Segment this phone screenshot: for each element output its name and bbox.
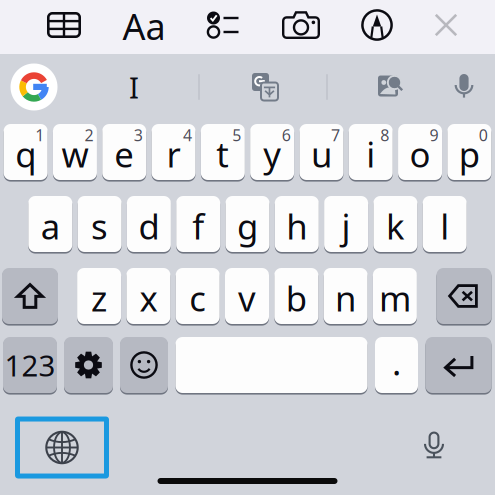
staticText: g bbox=[237, 203, 258, 249]
button[interactable]: Translate bbox=[242, 64, 288, 110]
button[interactable]: a bbox=[28, 196, 72, 252]
button[interactable]: d bbox=[127, 196, 171, 252]
button[interactable]: Emoji bbox=[120, 337, 168, 393]
staticText: w bbox=[61, 131, 88, 177]
staticText: 8 bbox=[380, 124, 389, 146]
staticText: n bbox=[335, 275, 356, 321]
staticText: r bbox=[166, 131, 180, 177]
staticText: 3 bbox=[134, 124, 143, 146]
staticText: d bbox=[138, 203, 159, 249]
staticText: e bbox=[114, 131, 134, 177]
button[interactable]: q bbox=[4, 124, 48, 180]
staticText: h bbox=[286, 203, 307, 249]
staticText: f bbox=[192, 203, 204, 249]
button[interactable]: c bbox=[176, 268, 220, 324]
staticText: b bbox=[286, 275, 307, 321]
button[interactable]: v bbox=[225, 268, 269, 324]
button[interactable]: Checklist bbox=[191, 0, 255, 52]
button[interactable]: Close bbox=[416, 0, 476, 52]
button[interactable]: Return bbox=[425, 337, 491, 393]
staticText: t bbox=[216, 131, 229, 177]
staticText: 9 bbox=[430, 124, 439, 146]
button[interactable]: Numbers bbox=[3, 337, 57, 393]
staticText: 7 bbox=[331, 124, 340, 146]
staticText: k bbox=[386, 203, 405, 249]
staticText: 5 bbox=[232, 124, 241, 146]
staticText: p bbox=[459, 131, 480, 177]
button[interactable]: Settings bbox=[64, 337, 113, 393]
staticText: u bbox=[311, 131, 332, 177]
button[interactable]: Table bbox=[32, 0, 96, 52]
staticText: 123 bbox=[4, 345, 55, 384]
staticText: I bbox=[129, 67, 139, 106]
button[interactable]: w bbox=[53, 124, 97, 180]
staticText: 4 bbox=[183, 124, 192, 146]
button[interactable]: Markup bbox=[345, 0, 409, 52]
staticText: x bbox=[139, 275, 157, 321]
button[interactable]: Space bbox=[175, 337, 367, 393]
button[interactable]: Google bbox=[7, 60, 61, 114]
staticText: o bbox=[410, 131, 431, 177]
staticText: z bbox=[91, 275, 107, 321]
staticText: . bbox=[392, 339, 401, 385]
button[interactable]: Dictate bbox=[414, 426, 454, 466]
button[interactable]: y bbox=[250, 124, 294, 180]
staticText: v bbox=[238, 275, 256, 321]
button[interactable]: Next keyboard bbox=[17, 419, 106, 476]
button[interactable]: i bbox=[349, 124, 393, 180]
staticText: q bbox=[15, 131, 36, 177]
staticText: 1 bbox=[35, 124, 44, 146]
button[interactable]: Shift bbox=[2, 268, 58, 324]
button[interactable]: o bbox=[398, 124, 442, 180]
button[interactable]: Camera bbox=[269, 0, 333, 52]
button[interactable]: n bbox=[324, 268, 368, 324]
button[interactable]: k bbox=[373, 196, 417, 252]
button[interactable]: p bbox=[447, 124, 491, 180]
staticText: s bbox=[91, 203, 108, 249]
staticText: m bbox=[379, 275, 411, 321]
button[interactable]: g bbox=[225, 196, 269, 252]
button[interactable]: z bbox=[77, 268, 121, 324]
staticText: y bbox=[263, 131, 281, 177]
button[interactable]: Delete bbox=[436, 268, 491, 324]
staticText: Aa bbox=[122, 2, 165, 50]
button[interactable]: j bbox=[324, 196, 368, 252]
staticText: i bbox=[366, 131, 375, 177]
button[interactable]: t bbox=[201, 124, 245, 180]
button[interactable]: Voice input bbox=[444, 67, 484, 107]
button[interactable]: b bbox=[274, 268, 318, 324]
button[interactable]: l bbox=[423, 196, 467, 252]
button[interactable]: Image search bbox=[368, 64, 414, 110]
button[interactable]: h bbox=[275, 196, 319, 252]
staticText: j bbox=[342, 203, 351, 249]
button[interactable]: s bbox=[78, 196, 122, 252]
staticText: l bbox=[440, 203, 449, 249]
staticText: 2 bbox=[84, 124, 93, 146]
button[interactable]: e bbox=[102, 124, 146, 180]
button[interactable]: x bbox=[126, 268, 170, 324]
button[interactable]: Period bbox=[375, 337, 418, 393]
button[interactable]: r bbox=[151, 124, 195, 180]
staticText: 0 bbox=[479, 124, 488, 146]
button[interactable]: u bbox=[299, 124, 343, 180]
button[interactable]: f bbox=[176, 196, 220, 252]
staticText: a bbox=[41, 203, 60, 249]
button[interactable]: Text format bbox=[112, 0, 176, 53]
button[interactable]: m bbox=[373, 268, 417, 324]
staticText: 6 bbox=[282, 124, 291, 146]
staticText: c bbox=[189, 275, 206, 321]
